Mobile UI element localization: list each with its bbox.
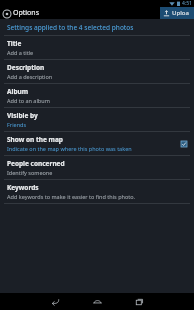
button[interactable]: App icon, navigate up [2, 9, 11, 18]
button[interactable]: Upload [160, 7, 194, 19]
button[interactable]: Album [0, 84, 194, 107]
staticText: 4:51 [182, 0, 192, 7]
staticText: Show on the map [7, 135, 63, 144]
button[interactable]: Description [0, 60, 194, 83]
button[interactable]: Show on the map toggle [178, 138, 189, 149]
staticText: Identify someone [7, 169, 53, 176]
button[interactable]: People concerned [0, 156, 194, 179]
staticText: Album [7, 87, 29, 96]
staticText: People concerned [7, 159, 65, 168]
staticText: Add a title [7, 49, 34, 56]
staticText: Friends [7, 121, 27, 128]
staticText: Description [7, 63, 45, 72]
staticText: Keywords [7, 183, 39, 192]
staticText: Options [13, 8, 40, 18]
button[interactable]: Home [80, 293, 114, 310]
button[interactable]: Keywords [0, 180, 194, 203]
staticText: Upload [172, 9, 191, 17]
button[interactable]: Visible by [0, 108, 194, 131]
button[interactable]: Back [38, 293, 72, 310]
staticText: Add to an album [7, 97, 50, 104]
staticText: Visible by [7, 111, 38, 120]
staticText: Settings applied to the 4 selected photo… [7, 23, 134, 32]
button[interactable]: Recent apps [122, 293, 156, 310]
staticText: Indicate on the map where this photo was… [7, 145, 132, 152]
staticText: Add a description [7, 73, 53, 80]
staticText: Add keywords to make it easier to find t… [7, 193, 136, 200]
button[interactable]: Title [0, 36, 194, 59]
staticText: Title [7, 39, 22, 48]
button[interactable]: Show on the map [0, 132, 194, 155]
